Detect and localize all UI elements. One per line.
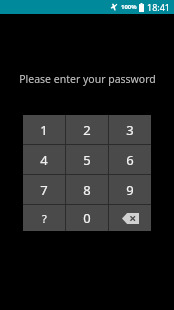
- button[interactable]: 6: [109, 145, 151, 174]
- button[interactable]: 5: [66, 145, 108, 174]
- button[interactable]: 4: [23, 145, 65, 174]
- staticText: 100%: [121, 3, 137, 11]
- staticText: 9: [126, 181, 134, 199]
- staticText: Please enter your password: [19, 72, 156, 86]
- staticText: 2: [83, 121, 91, 139]
- staticText: ?: [42, 211, 47, 226]
- staticText: 5: [83, 151, 91, 169]
- button[interactable]: 2: [66, 115, 108, 144]
- staticText: 4: [40, 151, 48, 169]
- staticText: 6: [126, 151, 134, 169]
- staticText: 0: [83, 209, 91, 227]
- button[interactable]: Delete: [109, 205, 151, 231]
- button[interactable]: 1: [23, 115, 65, 144]
- button[interactable]: ?: [23, 205, 65, 231]
- staticText: 1: [40, 121, 48, 139]
- button[interactable]: 3: [109, 115, 151, 144]
- staticText: 7: [40, 181, 48, 199]
- staticText: 8: [83, 181, 91, 199]
- button[interactable]: 0: [66, 205, 108, 231]
- button[interactable]: 8: [66, 175, 108, 204]
- button[interactable]: 7: [23, 175, 65, 204]
- button[interactable]: 9: [109, 175, 151, 204]
- staticText: 3: [126, 121, 134, 139]
- staticText: 18:41: [147, 1, 171, 13]
